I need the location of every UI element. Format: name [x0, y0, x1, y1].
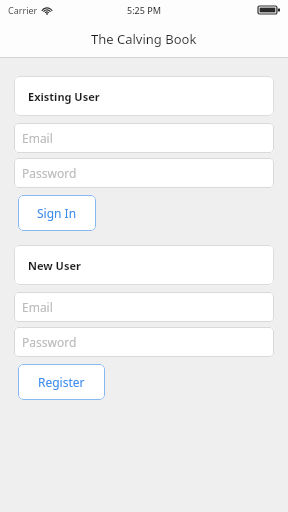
button[interactable]: Password [14, 158, 274, 188]
staticText: Email [22, 299, 53, 315]
staticText: Sign In [37, 205, 77, 221]
button[interactable]: Email [14, 292, 274, 322]
button[interactable]: Email [14, 123, 274, 153]
staticText: The Calving Book [91, 30, 197, 48]
staticText: New User [28, 258, 81, 273]
staticText: Carrier [8, 4, 38, 16]
button[interactable]: Sign In [18, 195, 96, 231]
button[interactable]: Register [18, 364, 105, 400]
staticText: Email [22, 130, 53, 146]
staticText: Existing User [28, 89, 100, 104]
button[interactable]: Existing User [14, 76, 274, 116]
staticText: Password [22, 165, 77, 181]
staticText: Password [22, 334, 77, 350]
button[interactable]: Password [14, 327, 274, 357]
button[interactable]: New User [14, 245, 274, 285]
staticText: Register [38, 374, 85, 390]
staticText: 5:25 PM [127, 4, 161, 16]
